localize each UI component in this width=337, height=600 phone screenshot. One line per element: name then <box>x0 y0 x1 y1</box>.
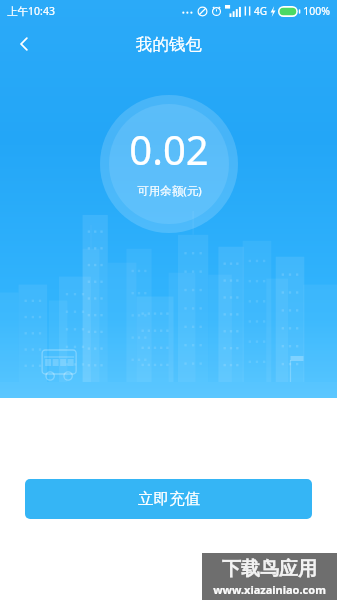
staticText: 100% <box>303 4 330 18</box>
button[interactable]: 立即充值 <box>25 479 312 519</box>
button[interactable]: Back <box>6 26 42 62</box>
staticText: 可用余额(元) <box>137 183 202 199</box>
staticText: 上午10:43 <box>7 4 55 18</box>
staticText: 我的钱包 <box>136 34 202 55</box>
staticText: www.xiazainiao.com <box>213 582 326 597</box>
staticText: 0.02 <box>129 122 209 176</box>
staticText: 4G <box>254 4 267 18</box>
staticText: 下载鸟应用 <box>222 557 317 581</box>
staticText: 立即充值 <box>138 489 200 509</box>
